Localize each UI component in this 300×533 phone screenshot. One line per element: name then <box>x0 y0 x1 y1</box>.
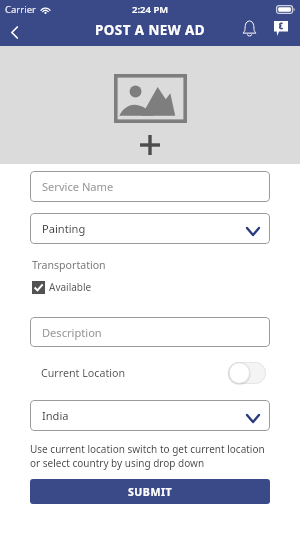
button[interactable]: India <box>30 400 270 431</box>
staticText: Description <box>42 325 102 340</box>
staticText: SUBMIT <box>128 485 173 499</box>
button[interactable]: Add photo <box>0 46 300 164</box>
staticText: Use current location switch to get curre… <box>30 442 265 470</box>
staticText: Painting <box>42 221 86 236</box>
button[interactable]: Messages <box>268 14 294 42</box>
staticText: India <box>42 408 69 423</box>
staticText: Available <box>49 280 92 294</box>
staticText: POST A NEW AD <box>95 21 205 39</box>
button[interactable]: Service Name <box>30 171 270 202</box>
button[interactable]: Available checkbox <box>32 280 92 294</box>
staticText: Service Name <box>42 179 114 194</box>
staticText: Carrier <box>5 3 36 16</box>
button[interactable]: Description <box>30 317 270 347</box>
button[interactable]: Current Location <box>0 362 300 384</box>
button[interactable]: Back <box>0 18 28 46</box>
button[interactable]: Notifications <box>236 14 262 42</box>
button[interactable]: Painting <box>30 213 270 244</box>
button[interactable]: SUBMIT <box>30 479 270 504</box>
button[interactable]: Current location switch <box>228 362 266 384</box>
staticText: Current Location <box>41 366 126 381</box>
staticText: 2:24 PM <box>132 3 169 16</box>
staticText: Transportation <box>32 258 106 272</box>
